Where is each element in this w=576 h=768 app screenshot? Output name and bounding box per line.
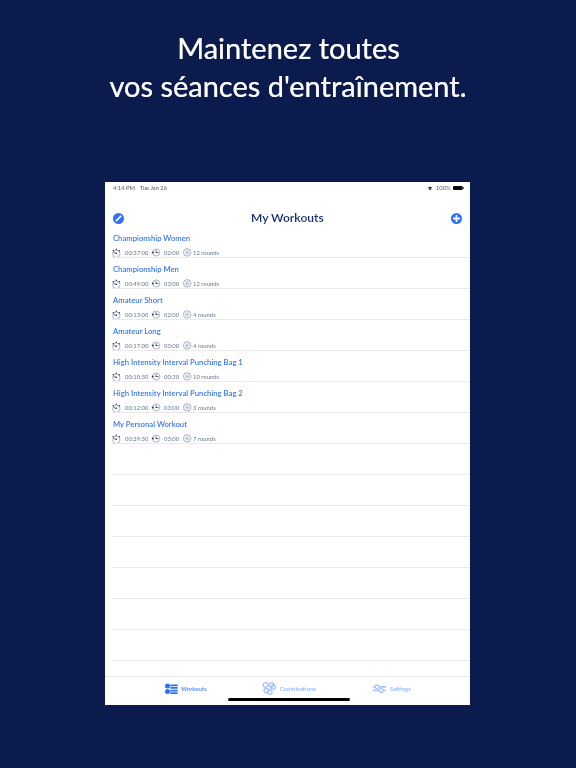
staticText: 12 rounds	[193, 249, 220, 256]
staticText: 3 rounds	[193, 404, 216, 411]
staticText: High Intensity Interval Punching Bag 1	[113, 357, 243, 366]
staticText: 100%	[436, 184, 451, 191]
staticText: 4 rounds	[193, 342, 216, 349]
staticText: 03:00	[164, 280, 180, 287]
staticText: Amateur Short	[113, 295, 163, 304]
staticText: 03:00	[164, 435, 180, 442]
staticText: 00:17:00	[125, 342, 149, 349]
button[interactable]: My Personal Workout	[105, 413, 470, 444]
staticText: 4:14 PM	[113, 184, 135, 191]
staticText: Amateur Long	[113, 326, 161, 335]
button[interactable]: Amateur Short	[105, 289, 470, 320]
staticText: High Intensity Interval Punching Bag 2	[113, 388, 243, 397]
button[interactable]: Combinations	[263, 682, 316, 694]
staticText: 00:13:00	[125, 311, 149, 318]
button[interactable]: Workouts	[165, 682, 207, 694]
button[interactable]: Amateur Long	[105, 320, 470, 351]
button[interactable]: High Intensity Interval Punching Bag 1	[105, 351, 470, 382]
staticText: My Personal Workout	[113, 419, 187, 428]
staticText: Championship Women	[113, 233, 191, 242]
button[interactable]: Championship Women	[105, 227, 470, 258]
button[interactable]: Settings	[373, 682, 411, 694]
staticText: Settings	[390, 685, 411, 692]
staticText: 7 rounds	[193, 435, 216, 442]
staticText: 00:10:30	[125, 373, 149, 380]
staticText: Tue Jan 26	[140, 184, 168, 191]
staticText: vos séances d'entraînement.	[109, 68, 467, 103]
staticText: Championship Men	[113, 264, 179, 273]
button[interactable]: High Intensity Interval Punching Bag 2	[105, 382, 470, 413]
staticText: 10 rounds	[193, 373, 220, 380]
button[interactable]: Championship Men	[105, 258, 470, 289]
staticText: 02:00	[164, 311, 180, 318]
staticText: 00:30	[164, 373, 180, 380]
staticText: 02:00	[164, 249, 180, 256]
staticText: 00:29:30	[125, 435, 149, 442]
staticText: 03:00	[164, 404, 180, 411]
staticText: 00:49:00	[125, 280, 149, 287]
staticText: 4 rounds	[193, 311, 216, 318]
button[interactable]: Add workout	[451, 213, 462, 224]
staticText: My Workouts	[251, 210, 324, 224]
staticText: 12 rounds	[193, 280, 220, 287]
staticText: Combinations	[280, 685, 316, 692]
staticText: 00:12:00	[125, 404, 149, 411]
staticText: 00:37:00	[125, 249, 149, 256]
staticText: 03:00	[164, 342, 180, 349]
staticText: Workouts	[181, 685, 207, 692]
button[interactable]: Edit workouts	[113, 213, 124, 224]
staticText: Maintenez toutes	[177, 30, 400, 65]
